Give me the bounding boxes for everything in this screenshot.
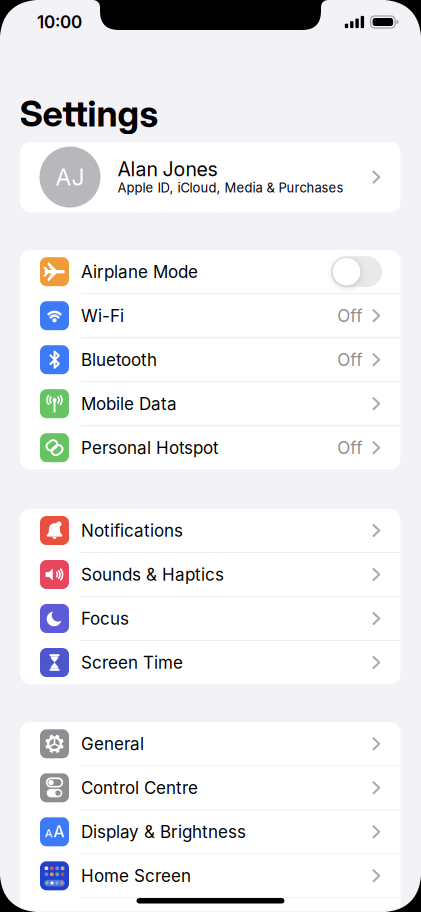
staticText: Home Screen — [81, 865, 191, 886]
button[interactable]: AJ — [0, 142, 421, 212]
staticText: Bluetooth — [81, 349, 157, 370]
button[interactable]: Mobile Data — [20, 382, 400, 425]
button[interactable]: Focus — [20, 597, 400, 640]
staticText: Off — [337, 305, 362, 326]
staticText: Focus — [81, 608, 129, 629]
staticText: Personal Hotspot — [81, 437, 219, 458]
button[interactable]: General — [20, 722, 400, 765]
button[interactable]: Control Centre — [20, 766, 400, 809]
staticText: Mobile Data — [81, 393, 177, 414]
button[interactable]: Home Screen — [20, 854, 400, 897]
button[interactable]: Screen Time — [20, 641, 400, 684]
staticText: 10:00 — [37, 12, 82, 32]
staticText: Sounds & Haptics — [81, 564, 224, 585]
staticText: A — [53, 822, 64, 841]
button[interactable]: Sounds & Haptics — [20, 553, 400, 596]
staticText: Airplane Mode — [81, 261, 198, 282]
button[interactable]: A — [20, 810, 400, 853]
staticText: Display & Brightness — [81, 821, 246, 842]
staticText: AJ — [55, 163, 84, 191]
button[interactable]: Personal Hotspot — [20, 426, 400, 469]
staticText: Settings — [19, 91, 158, 135]
staticText: Off — [337, 437, 362, 458]
staticText: Apple ID, iCloud, Media & Purchases — [117, 180, 343, 196]
staticText: A — [45, 826, 53, 840]
staticText: Wi-Fi — [81, 305, 124, 326]
button[interactable]: Airplane Mode — [20, 250, 400, 293]
staticText: Screen Time — [81, 652, 183, 673]
staticText: Notifications — [81, 520, 183, 541]
staticText: Off — [337, 349, 362, 370]
staticText: Control Centre — [81, 777, 198, 798]
staticText: Alan Jones — [117, 157, 217, 181]
button[interactable]: Bluetooth — [20, 338, 400, 381]
staticText: General — [81, 733, 144, 754]
button[interactable]: Notifications — [20, 509, 400, 552]
button[interactable]: Wi-Fi — [20, 294, 400, 337]
